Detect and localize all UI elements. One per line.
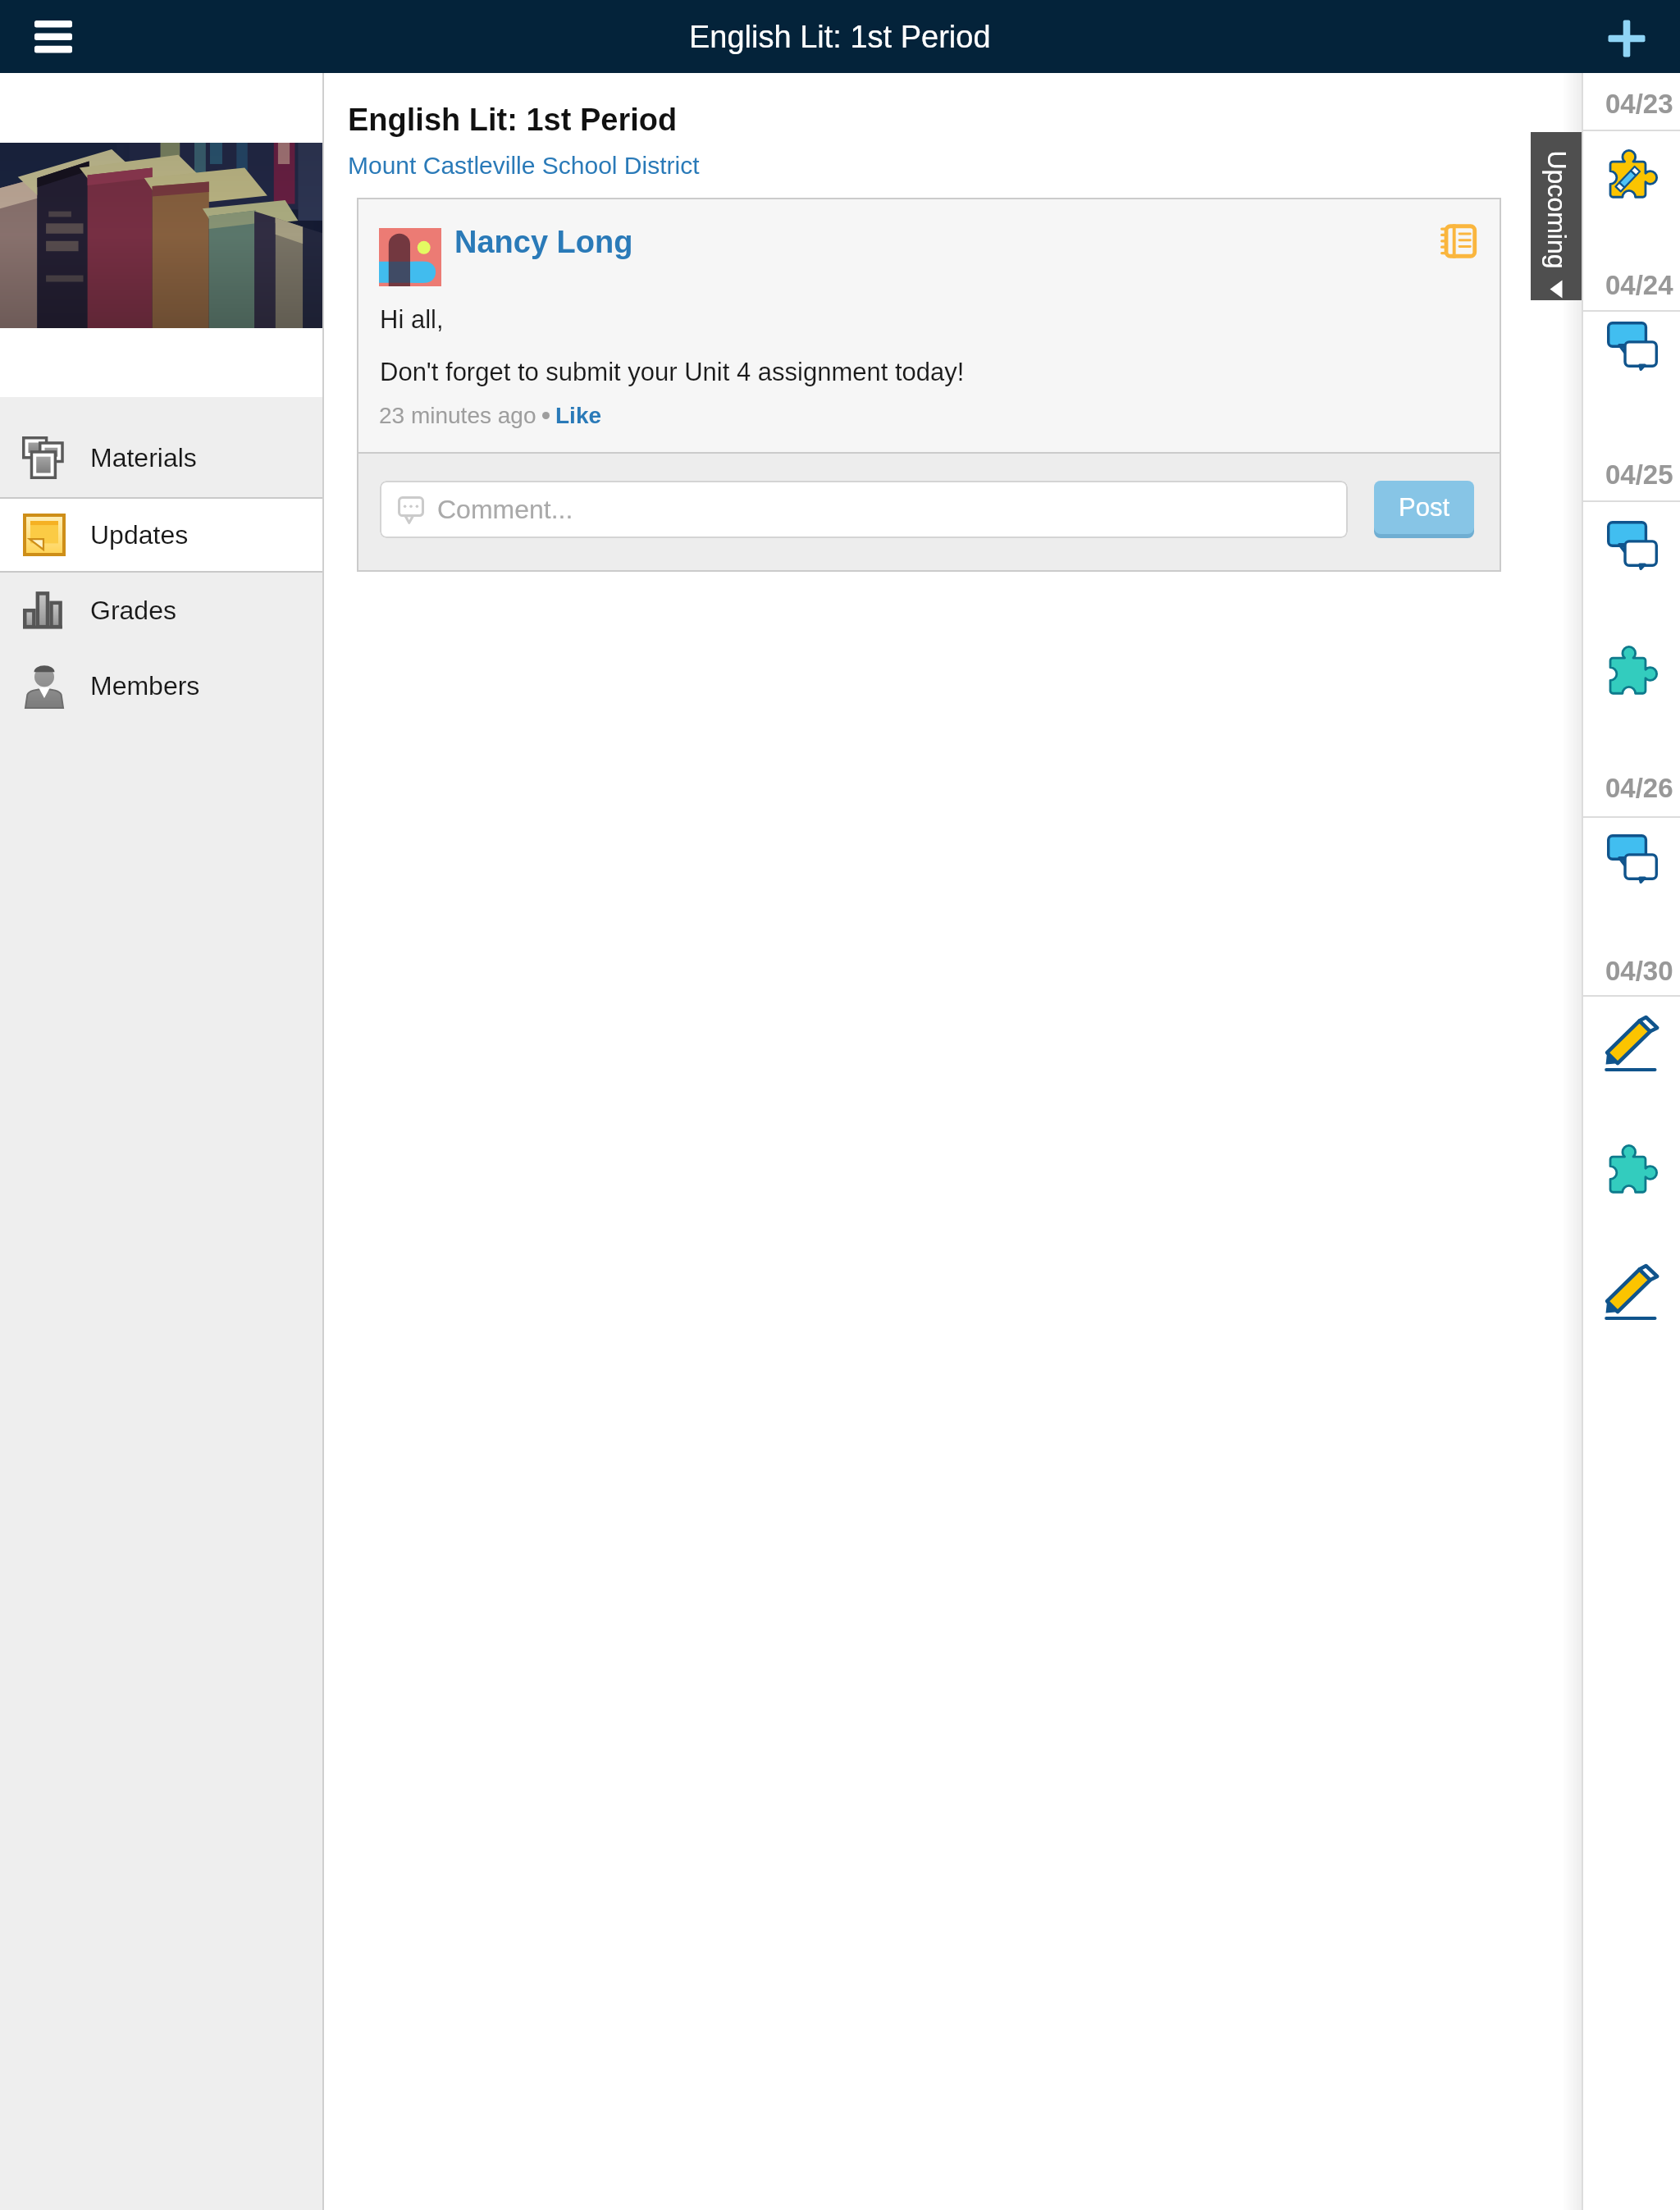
button[interactable]: Discussion due 04/26 [1583,816,1680,902]
button[interactable]: Discussion due 04/25 [1583,503,1680,588]
staticText: Hi all, [380,305,444,334]
staticText: 23 minutes ago [379,403,536,428]
staticText: 04/26 [1605,773,1673,803]
button[interactable]: Members [0,648,324,724]
button[interactable]: Materials [0,418,324,497]
staticText: Upcoming [1542,151,1571,269]
button[interactable]: Add [1573,0,1680,73]
staticText: Members [90,671,200,701]
staticText: Comment... [437,495,573,524]
button[interactable]: Post [1374,481,1474,534]
staticText: 04/24 [1605,270,1673,300]
staticText: Updates [90,520,189,550]
staticText: 04/25 [1605,459,1673,490]
staticText: 04/30 [1605,956,1673,986]
button[interactable]: Assignment due 04/30 [1583,1002,1680,1088]
staticText: English Lit: 1st Period [348,103,678,137]
button[interactable]: Discussion due 04/24 [1583,304,1680,389]
button[interactable]: Updates [0,499,324,571]
button[interactable]: Menu [0,0,107,73]
button[interactable]: Quiz due 04/25 [1583,628,1680,714]
staticText: Grades [90,596,176,625]
button[interactable]: Like [555,403,602,428]
button[interactable]: Mount Castleville School District [348,152,700,180]
button[interactable]: Assignment due 04/23 [1583,132,1680,217]
button[interactable]: Upcoming [1531,132,1582,300]
staticText: Materials [90,443,197,473]
staticText: 04/23 [1605,89,1673,119]
button[interactable]: Quiz due 04/30 [1583,1127,1680,1212]
button[interactable]: Nancy Long [454,225,633,259]
staticText: Don't forget to submit your Unit 4 assig… [380,358,965,386]
button[interactable]: Grades [0,573,324,648]
staticText: English Lit: 1st Period [689,20,991,54]
staticText: Post [1399,493,1450,522]
button[interactable]: Notebook [1440,222,1478,260]
button[interactable]: Comment... [380,481,1348,538]
button[interactable]: Assignment due 04/30 [1583,1251,1680,1336]
